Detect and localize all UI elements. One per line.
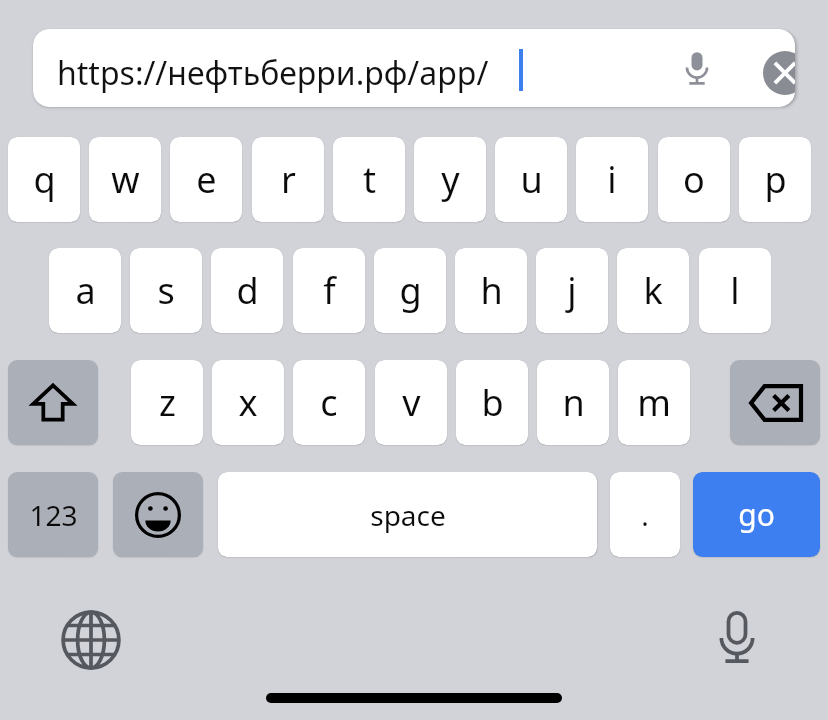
button[interactable]: 123 <box>8 472 98 557</box>
staticText: s <box>157 266 175 315</box>
staticText: 123 <box>29 496 78 534</box>
button[interactable]: x <box>212 360 284 445</box>
staticText: y <box>441 155 460 204</box>
button[interactable]: Emoji <box>113 472 203 557</box>
button[interactable]: a <box>49 248 121 333</box>
button[interactable]: w <box>89 137 161 222</box>
staticText: t <box>363 155 376 204</box>
button[interactable]: Shift <box>8 360 98 445</box>
staticText: q <box>33 155 56 204</box>
button[interactable]: o <box>658 137 730 222</box>
button[interactable]: h <box>455 248 527 333</box>
staticText: u <box>520 155 543 204</box>
button[interactable]: t <box>333 137 405 222</box>
button[interactable]: space <box>218 472 597 557</box>
button[interactable]: j <box>536 248 608 333</box>
staticText: l <box>730 266 740 315</box>
button[interactable]: i <box>576 137 648 222</box>
staticText: v <box>402 378 421 427</box>
button[interactable]: m <box>618 360 690 445</box>
button[interactable]: s <box>130 248 202 333</box>
button[interactable]: q <box>8 137 80 222</box>
button[interactable]: Voice search <box>673 44 721 92</box>
staticText: k <box>643 266 663 315</box>
staticText: f <box>323 266 336 315</box>
staticText: x <box>238 378 258 427</box>
button[interactable]: Change keyboard language <box>57 606 125 674</box>
button[interactable]: l <box>699 248 771 333</box>
button[interactable]: v <box>375 360 447 445</box>
staticText: e <box>196 155 217 204</box>
staticText: go <box>738 494 775 535</box>
button[interactable]: k <box>617 248 689 333</box>
staticText: j <box>567 266 577 315</box>
button[interactable]: b <box>456 360 528 445</box>
staticText: m <box>637 378 671 427</box>
staticText: n <box>562 378 585 427</box>
button[interactable]: Backspace <box>730 360 820 445</box>
button[interactable]: u <box>495 137 567 222</box>
button[interactable]: d <box>211 248 283 333</box>
staticText: . <box>641 496 649 534</box>
staticText: r <box>281 155 296 204</box>
button[interactable]: f <box>293 248 365 333</box>
staticText: b <box>481 378 504 427</box>
staticText: d <box>236 266 259 315</box>
button[interactable]: r <box>252 137 324 222</box>
button[interactable]: n <box>537 360 609 445</box>
button[interactable]: https://нефтьберри.рф/app/ <box>33 29 795 107</box>
staticText: z <box>159 378 176 427</box>
staticText: h <box>480 266 503 315</box>
staticText: w <box>111 155 140 204</box>
button[interactable]: g <box>374 248 446 333</box>
button[interactable]: go <box>693 472 820 557</box>
button[interactable]: p <box>739 137 811 222</box>
button[interactable]: Clear text <box>763 51 795 95</box>
staticText: https://нефтьберри.рф/app/ <box>57 51 489 95</box>
staticText: c <box>320 378 338 427</box>
staticText: p <box>764 155 787 204</box>
button[interactable]: e <box>170 137 242 222</box>
staticText: g <box>399 266 422 315</box>
staticText: o <box>683 155 705 204</box>
button[interactable]: . <box>610 472 680 557</box>
button[interactable]: y <box>414 137 486 222</box>
staticText: space <box>370 496 446 534</box>
staticText: i <box>607 155 617 204</box>
button[interactable]: z <box>131 360 203 445</box>
staticText: a <box>75 266 96 315</box>
button[interactable]: Dictation <box>703 604 771 672</box>
button[interactable]: c <box>293 360 365 445</box>
